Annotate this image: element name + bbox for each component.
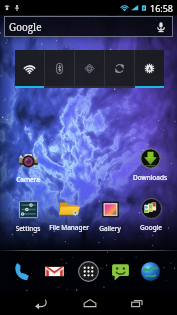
- button[interactable]: Recents: [115, 291, 159, 315]
- button[interactable]: Gallery: [88, 199, 132, 233]
- button[interactable]: Brightness: [135, 50, 164, 88]
- button[interactable]: Back: [19, 291, 63, 315]
- button[interactable]: Bluetooth: [45, 50, 74, 88]
- button[interactable]: Gmail: [39, 256, 69, 286]
- staticText: Gallery: [88, 224, 132, 233]
- staticText: File Manager: [47, 223, 91, 232]
- staticText: Google: [129, 223, 173, 232]
- staticText: Downloads: [128, 173, 172, 182]
- staticText: Google: [9, 20, 42, 34]
- button[interactable]: Settings: [6, 199, 50, 233]
- button[interactable]: Google: [4, 16, 173, 37]
- button[interactable]: Apps: [73, 256, 103, 286]
- button[interactable]: Wi-Fi: [15, 50, 44, 88]
- staticText: 16:58: [150, 2, 174, 14]
- button[interactable]: Camera: [6, 150, 50, 184]
- button[interactable]: Sync: [105, 50, 134, 88]
- button[interactable]: Voice search: [149, 16, 173, 37]
- button[interactable]: Downloads: [128, 148, 172, 182]
- button[interactable]: Phone: [7, 256, 37, 286]
- staticText: Camera: [6, 175, 50, 184]
- button[interactable]: File Manager: [47, 198, 91, 232]
- button[interactable]: Google: [129, 198, 173, 232]
- button[interactable]: Browser: [135, 256, 165, 286]
- button[interactable]: Home: [68, 291, 112, 315]
- staticText: Settings: [6, 224, 50, 233]
- button[interactable]: Messaging: [105, 256, 135, 286]
- button[interactable]: Location: [75, 50, 104, 88]
